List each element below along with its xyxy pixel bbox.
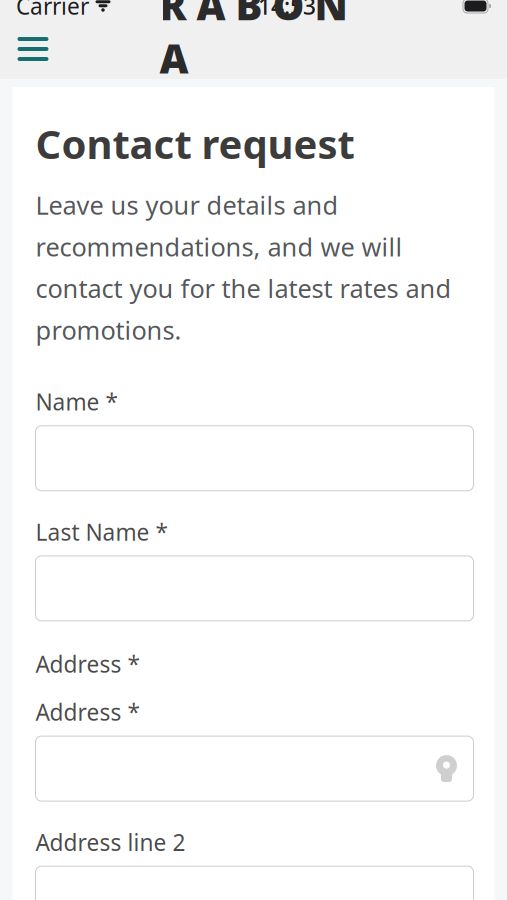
staticText: Contact request — [35, 117, 354, 170]
staticText: 14:53 — [258, 0, 316, 21]
staticText: Address line 2 — [35, 827, 185, 857]
staticText: Carrier — [16, 0, 89, 21]
button[interactable] — [35, 426, 473, 491]
staticText: Address * — [35, 697, 139, 727]
button[interactable] — [35, 736, 473, 801]
button[interactable] — [35, 556, 473, 621]
staticText: Address * — [35, 649, 139, 679]
button[interactable] — [35, 866, 473, 900]
button[interactable]: Menu — [10, 26, 56, 72]
staticText: R A B O N A — [159, 0, 347, 84]
staticText: Name * — [35, 387, 117, 417]
staticText: connect — [248, 82, 353, 120]
staticText: Last Name * — [35, 517, 167, 547]
staticText: Leave us your details and recommendation… — [35, 188, 451, 347]
